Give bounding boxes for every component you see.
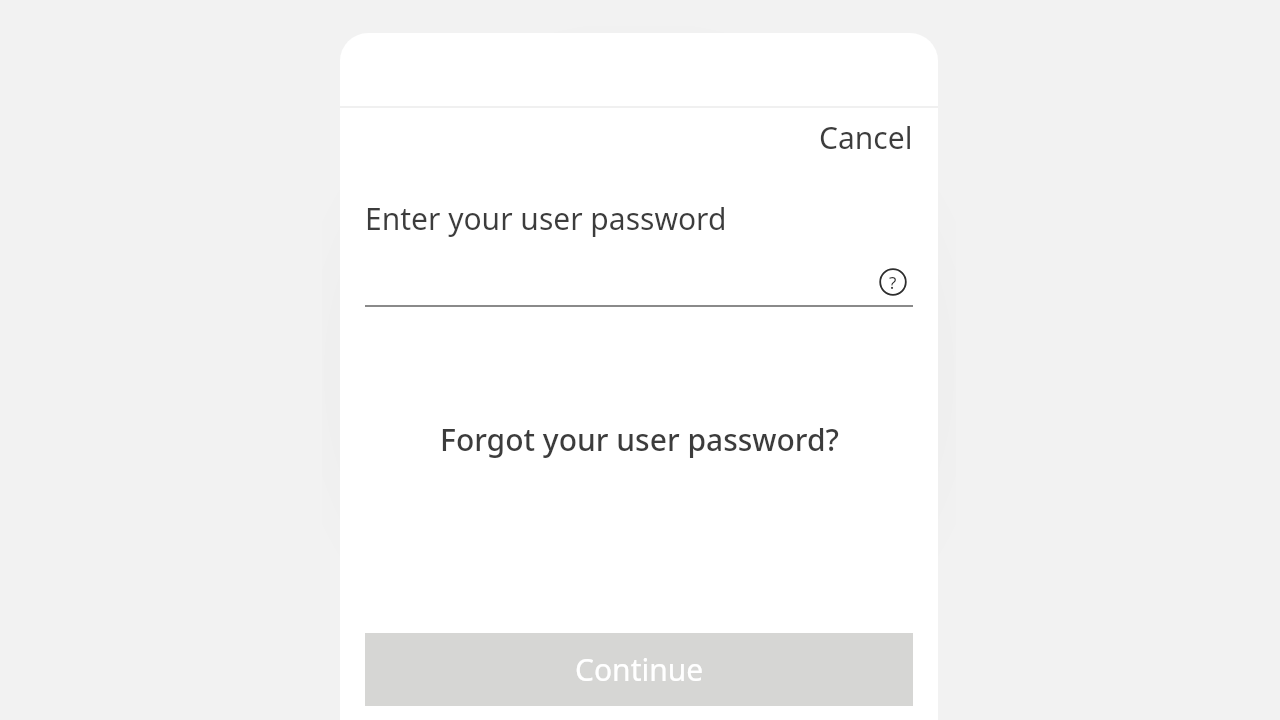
staticText: Cancel (819, 117, 913, 158)
button[interactable]: Cancel (794, 109, 938, 166)
button[interactable]: Help (873, 262, 913, 302)
button[interactable]: Forgot your user password? (340, 419, 938, 460)
staticText: Enter your user password (365, 198, 727, 239)
staticText: Forgot your user password? (440, 419, 839, 460)
button[interactable]: Continue (365, 633, 913, 706)
staticText: ? (889, 271, 897, 294)
staticText: Continue (575, 649, 704, 690)
